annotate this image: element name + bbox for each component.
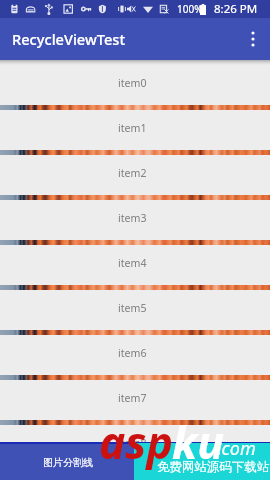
staticText: RecycleViewTest: [12, 29, 125, 49]
staticText: 图片分割线: [43, 456, 93, 469]
staticText: item8: [118, 436, 147, 450]
button[interactable]: item7: [0, 375, 270, 420]
button[interactable]: item5: [0, 285, 270, 330]
staticText: item1: [118, 121, 147, 135]
staticText: asp: [99, 411, 173, 472]
button[interactable]: 图片分割线: [0, 444, 270, 480]
button[interactable]: item4: [0, 240, 270, 285]
staticText: ku: [172, 411, 225, 472]
staticText: item3: [118, 211, 147, 225]
staticText: item2: [118, 166, 147, 180]
staticText: item5: [118, 301, 147, 315]
staticText: item4: [118, 256, 147, 270]
staticText: .com: [217, 436, 256, 461]
button[interactable]: item2: [0, 150, 270, 195]
button[interactable]: More options: [236, 18, 270, 60]
button[interactable]: item1: [0, 105, 270, 150]
button[interactable]: item6: [0, 330, 270, 375]
staticText: item0: [118, 76, 147, 90]
staticText: 免费网站源码下载站!: [157, 458, 270, 475]
staticText: item6: [118, 346, 147, 360]
button[interactable]: item8: [0, 420, 270, 465]
button[interactable]: item0: [0, 60, 270, 105]
staticText: 100%: [177, 2, 203, 16]
button[interactable]: item3: [0, 195, 270, 240]
staticText: 8:26 PM: [214, 1, 258, 17]
staticText: item7: [118, 391, 147, 405]
